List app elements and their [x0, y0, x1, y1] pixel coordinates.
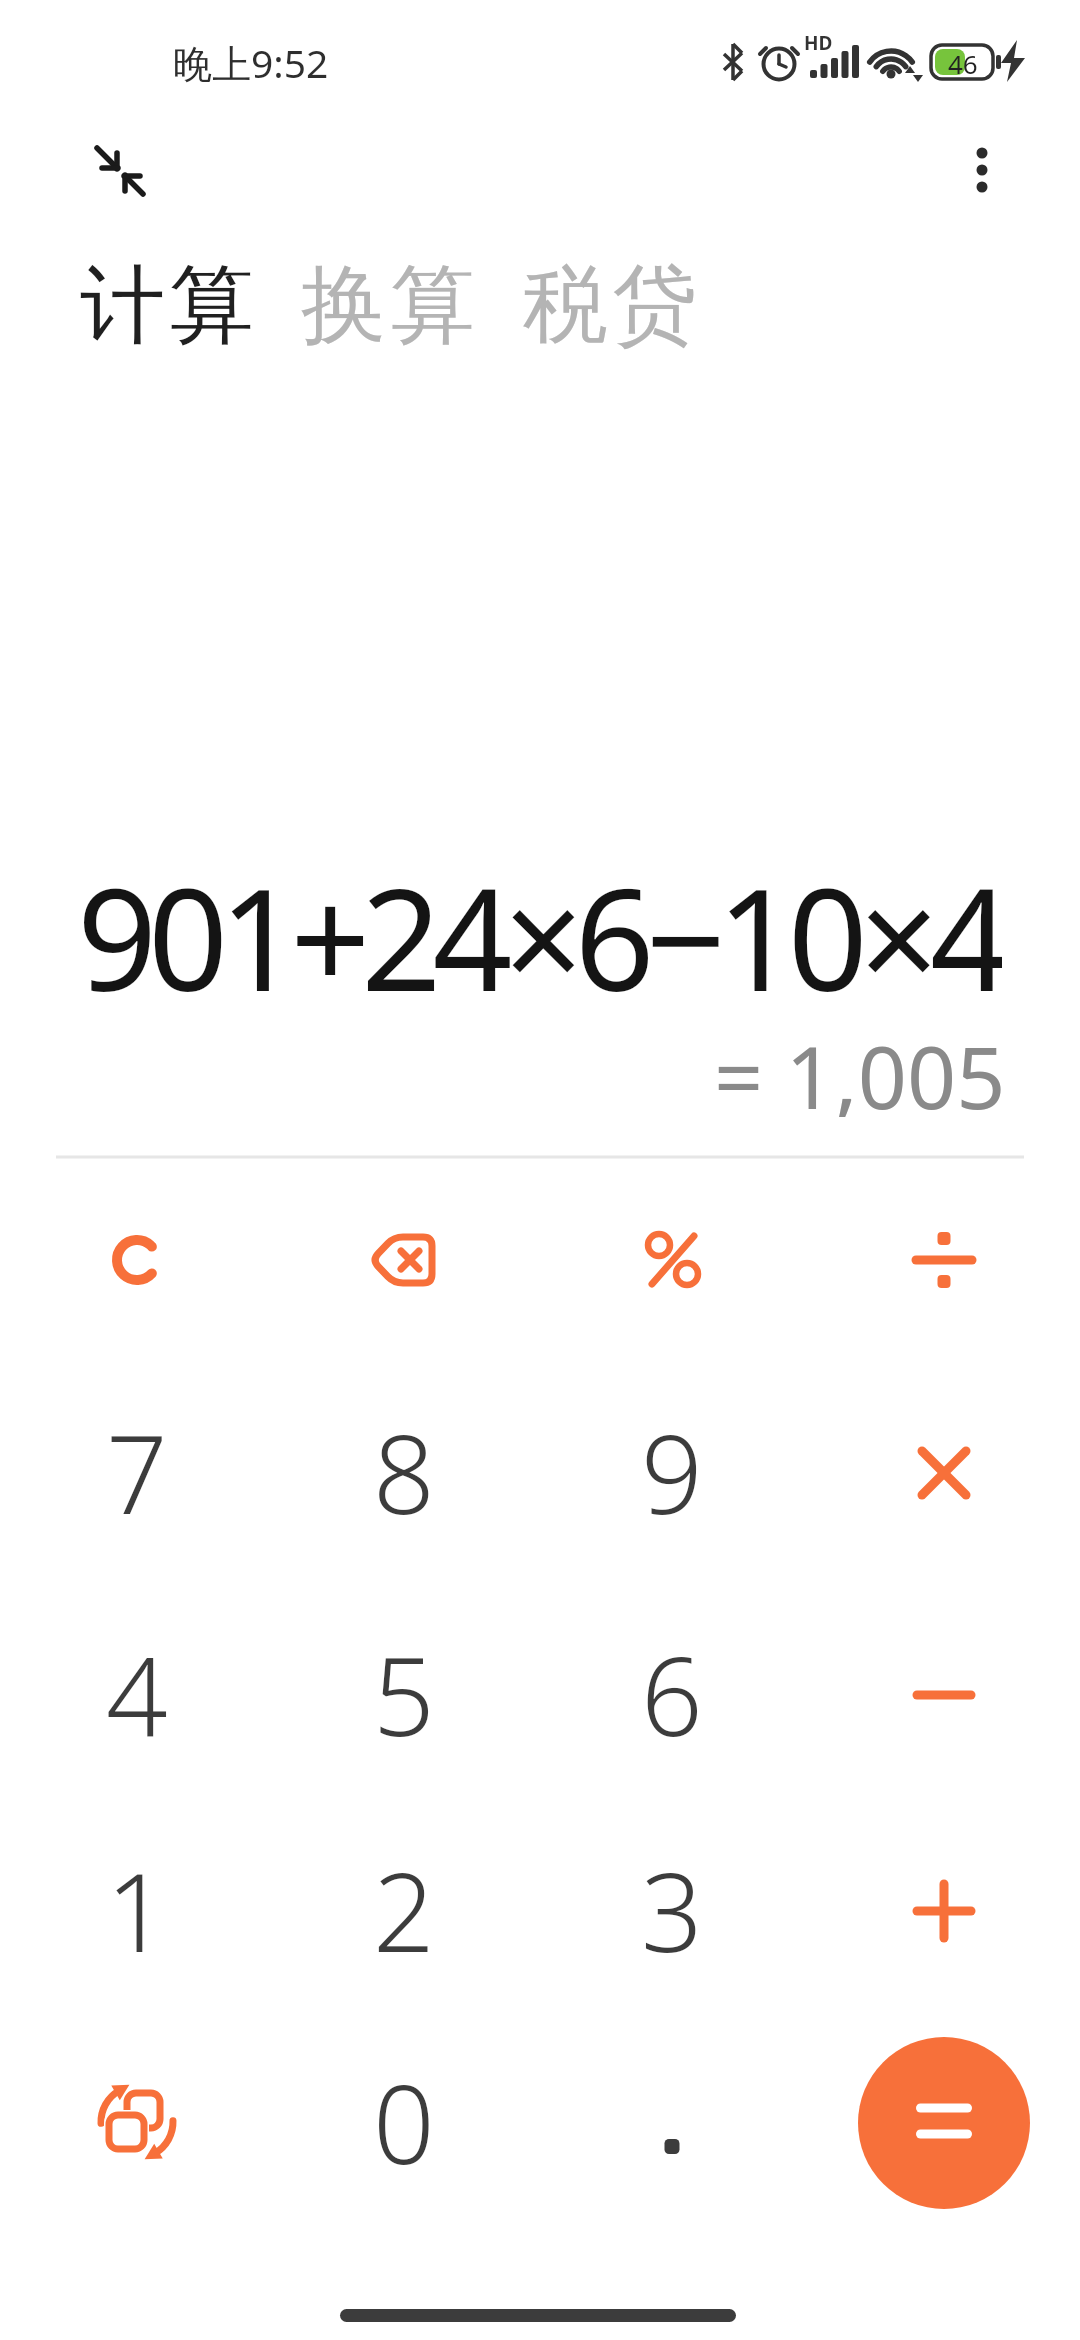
button[interactable]: 计算	[78, 252, 256, 359]
staticText: 8	[373, 1399, 435, 1546]
staticText: 换算	[299, 252, 477, 359]
staticText: 5	[373, 1621, 435, 1768]
staticText: 3	[641, 1837, 703, 1984]
staticText: 4	[106, 1621, 168, 1768]
button[interactable]	[834, 2025, 1054, 2220]
button[interactable]: 换算	[299, 252, 477, 359]
staticText: 2	[373, 1837, 435, 1984]
button[interactable]: 5	[294, 1597, 514, 1792]
staticText: 1	[106, 1837, 168, 1984]
staticText: 税贷	[521, 252, 699, 359]
button[interactable]	[86, 137, 150, 201]
button[interactable]	[834, 1162, 1054, 1357]
button[interactable]: 1	[27, 1813, 247, 2008]
button[interactable]	[294, 1162, 514, 1357]
staticText: 9	[641, 1399, 703, 1546]
staticText: 6	[641, 1621, 703, 1768]
button[interactable]	[834, 1375, 1054, 1570]
staticText: HD	[804, 30, 833, 56]
button[interactable]	[562, 1162, 782, 1357]
button[interactable]: 7	[27, 1375, 247, 1570]
button[interactable]	[27, 1162, 247, 1357]
button[interactable]: 2	[294, 1813, 514, 2008]
staticText: 计算	[78, 252, 256, 359]
button[interactable]: 8	[294, 1375, 514, 1570]
button[interactable]: 税贷	[521, 252, 699, 359]
button[interactable]: 4	[27, 1597, 247, 1792]
button[interactable]: 9	[562, 1375, 782, 1570]
button[interactable]: 0	[294, 2025, 514, 2220]
staticText: 901+24×6−10×4	[77, 841, 1002, 996]
button[interactable]: 3	[562, 1813, 782, 2008]
staticText: 0	[373, 2049, 435, 2196]
staticText: 晚上9:52	[173, 36, 329, 86]
button[interactable]	[562, 2025, 782, 2220]
staticText: = 1,005	[714, 1017, 1006, 1117]
button[interactable]	[834, 1597, 1054, 1792]
button[interactable]	[957, 137, 1007, 201]
button[interactable]	[27, 2025, 247, 2220]
staticText: 7	[106, 1399, 168, 1546]
staticText: 46	[948, 46, 978, 78]
button[interactable]: 6	[562, 1597, 782, 1792]
button[interactable]	[834, 1813, 1054, 2008]
